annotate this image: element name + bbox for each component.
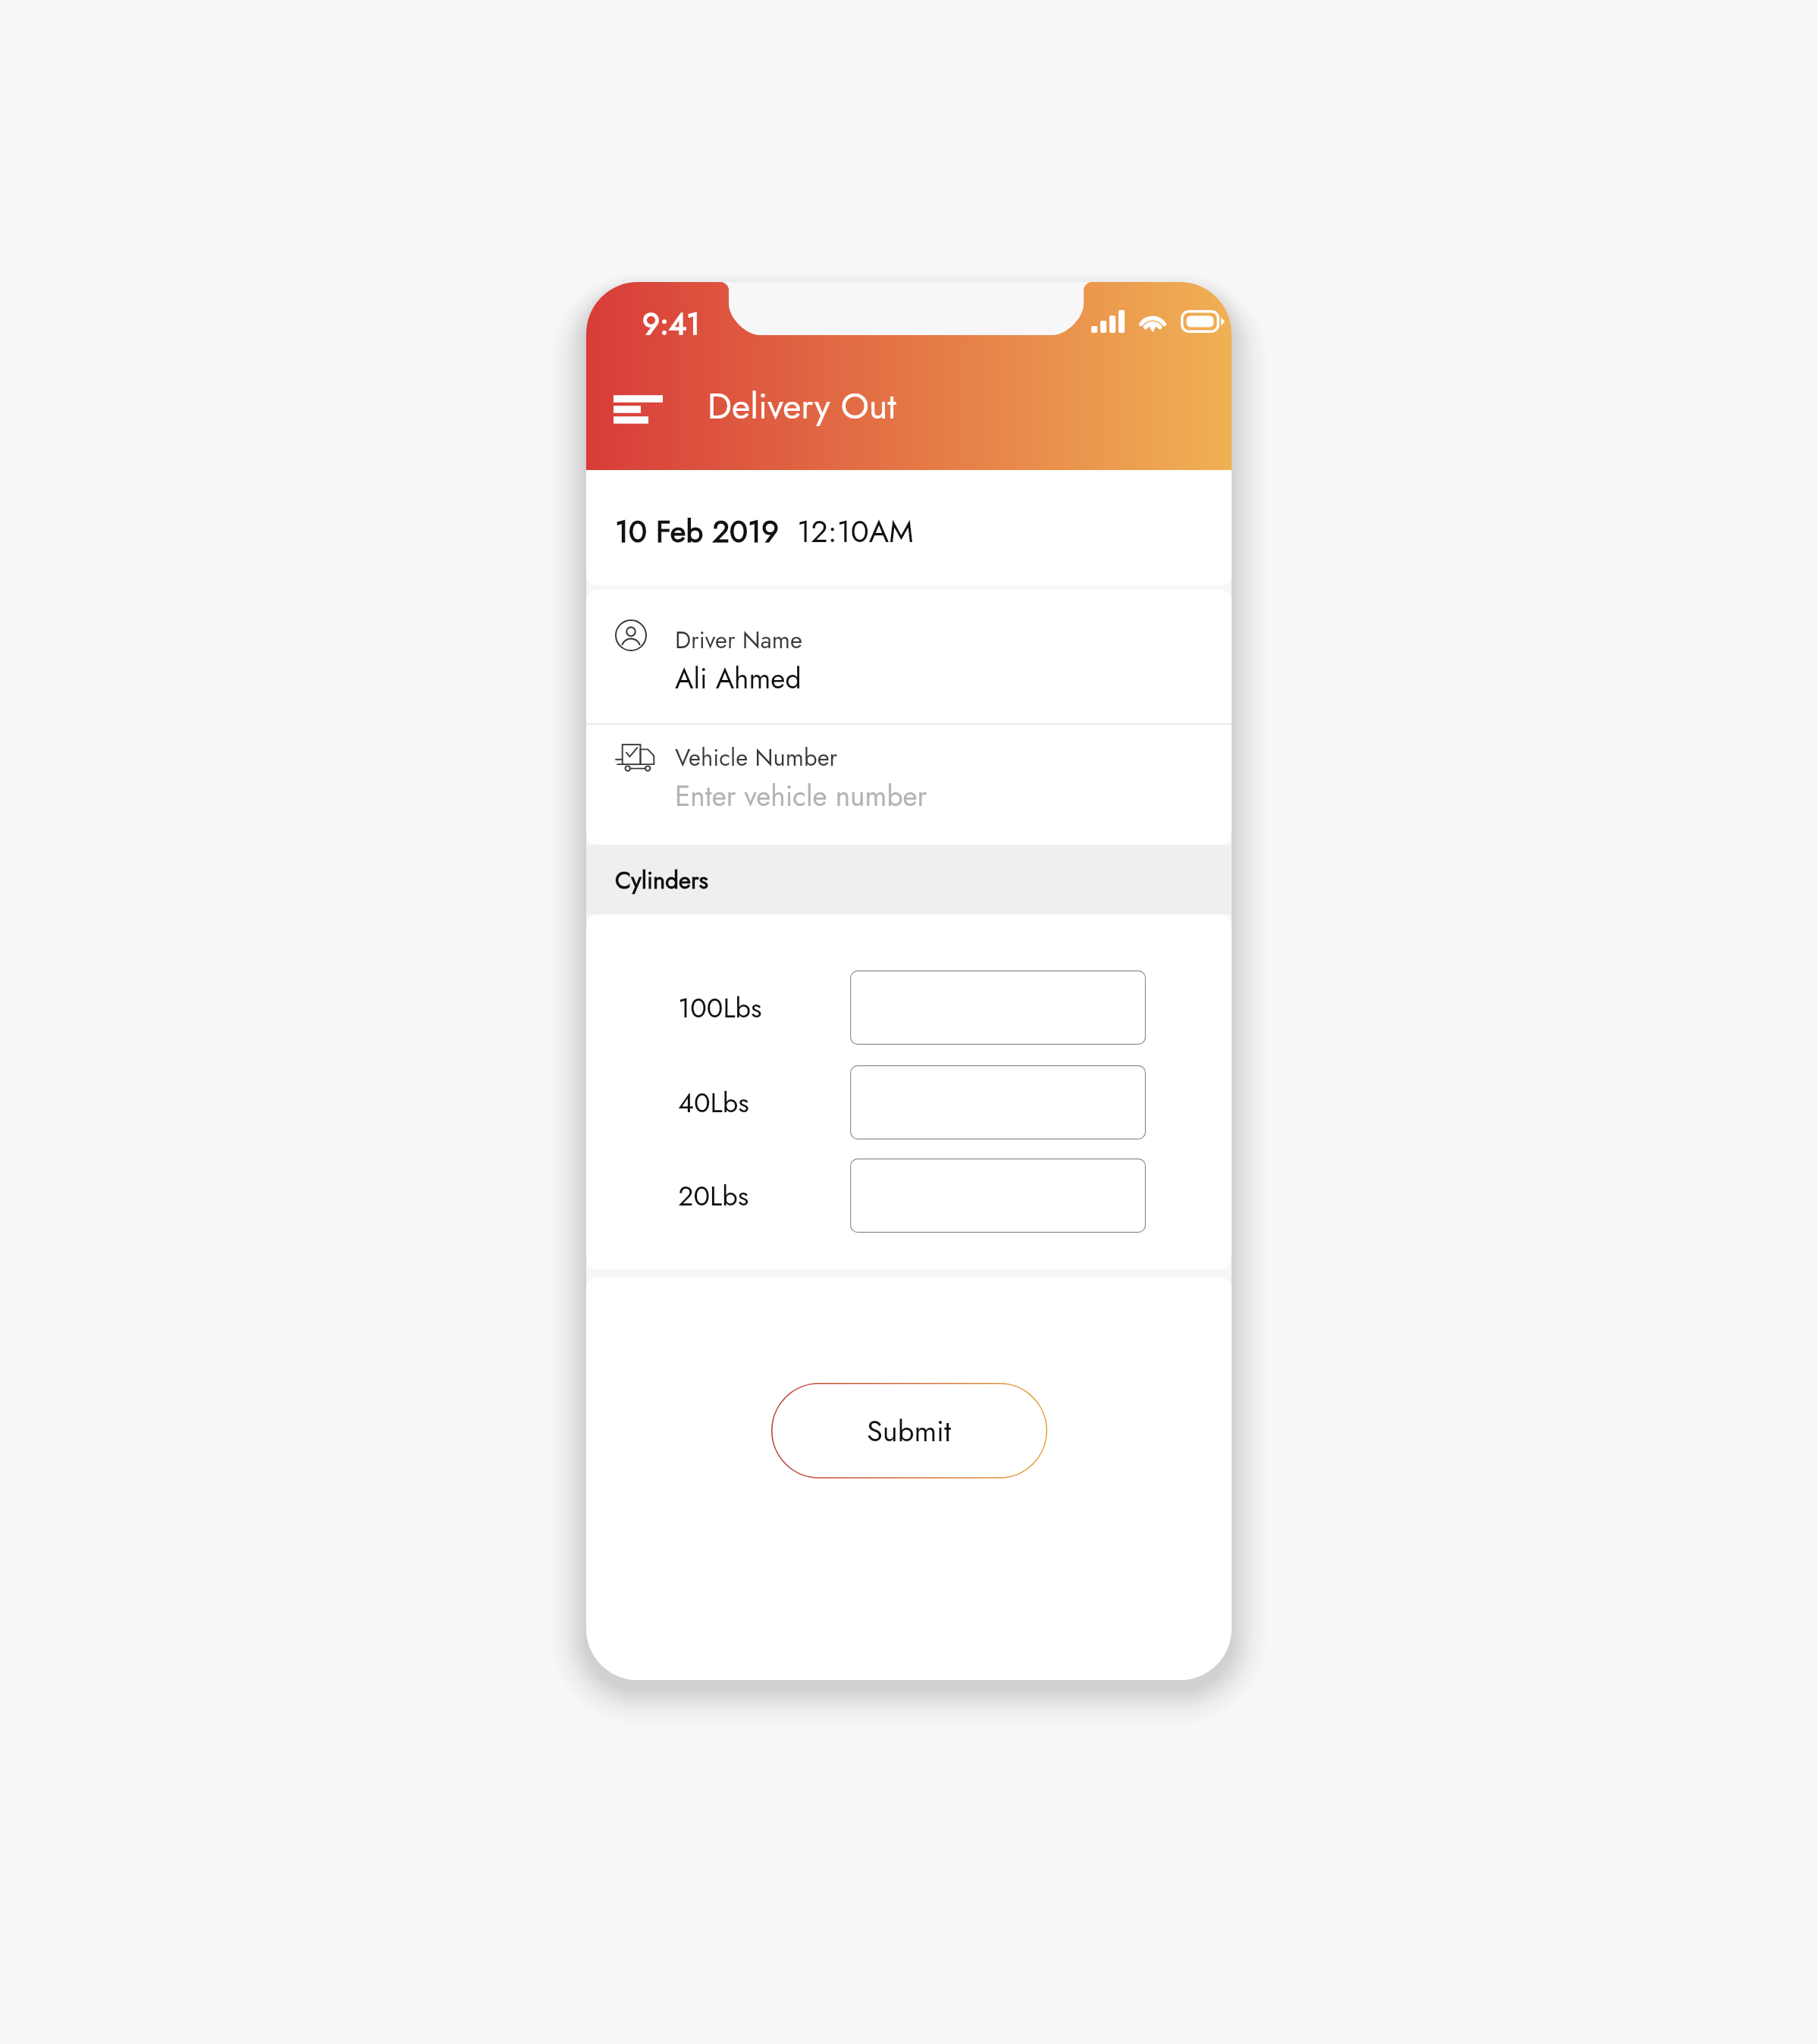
staticText: 12:10AM: [797, 509, 914, 553]
staticText: Submit: [867, 1410, 952, 1452]
staticText: 9:41: [642, 302, 701, 346]
staticText: Delivery Out: [708, 381, 896, 432]
staticText: Cylinders: [615, 864, 709, 898]
button[interactable]: 20Lbs quantity: [850, 1158, 1146, 1233]
staticText: 10 Feb 2019: [615, 509, 779, 553]
button[interactable]: 40Lbs quantity: [850, 1065, 1146, 1140]
button[interactable]: Open navigation menu: [600, 374, 679, 434]
staticText: Driver Name: [675, 623, 802, 657]
button[interactable]: Vehicle Number: [586, 725, 1232, 845]
button[interactable]: Driver Name: [586, 590, 1232, 723]
staticText: 20Lbs: [678, 1176, 749, 1215]
staticText: 40Lbs: [678, 1083, 749, 1122]
staticText: Vehicle Number: [675, 741, 838, 775]
staticText: Ali Ahmed: [675, 658, 802, 698]
button[interactable]: Submit: [771, 1383, 1047, 1478]
staticText: 100Lbs: [678, 988, 762, 1027]
staticText: Enter vehicle number: [675, 776, 927, 816]
button[interactable]: 100Lbs quantity: [850, 970, 1146, 1045]
